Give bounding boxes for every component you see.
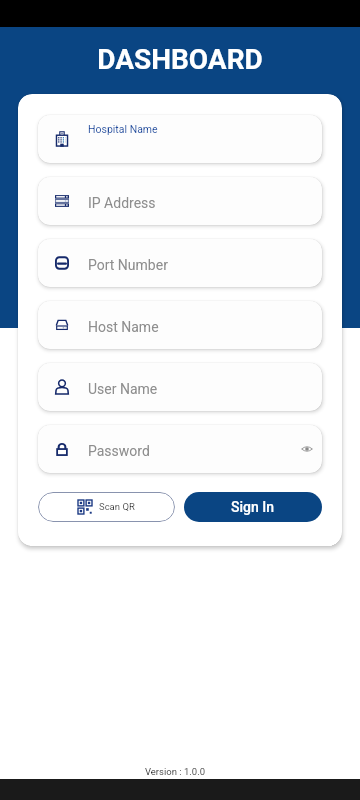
staticText: Hospital Name bbox=[88, 123, 158, 135]
button[interactable]: Password bbox=[38, 425, 322, 473]
button[interactable]: Host Name bbox=[38, 301, 322, 349]
button[interactable]: Sign In bbox=[184, 492, 322, 522]
button[interactable]: Hospital Name bbox=[38, 115, 322, 163]
staticText: User Name bbox=[88, 381, 313, 397]
staticText: Version : 1.0.0 bbox=[0, 766, 355, 777]
button[interactable]: Show password bbox=[301, 443, 313, 455]
staticText: IP Address bbox=[88, 195, 313, 211]
staticText: DASHBOARD bbox=[0, 43, 360, 76]
button[interactable]: Scan QR bbox=[38, 492, 175, 522]
button[interactable]: IP Address bbox=[38, 177, 322, 225]
staticText: Scan QR bbox=[99, 501, 135, 512]
staticText: Password bbox=[88, 443, 301, 459]
button[interactable]: Port Number bbox=[38, 239, 322, 287]
staticText: Port Number bbox=[88, 257, 313, 273]
staticText: Sign In bbox=[231, 499, 275, 515]
button[interactable]: User Name bbox=[38, 363, 322, 411]
staticText: Host Name bbox=[88, 319, 313, 335]
